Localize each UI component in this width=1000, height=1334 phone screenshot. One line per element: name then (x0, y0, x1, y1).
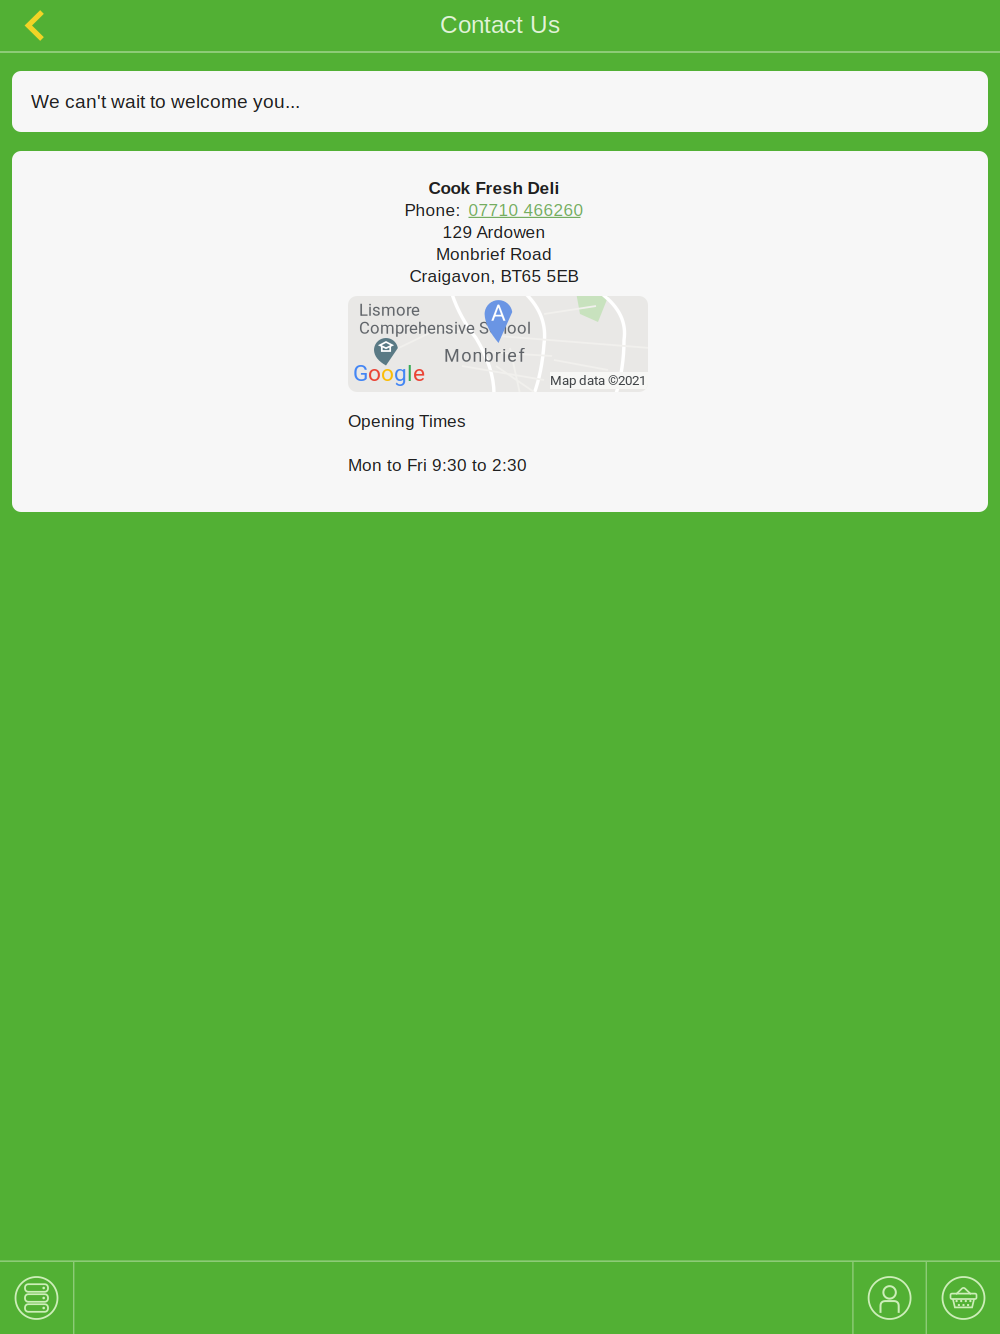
staticText: o (381, 360, 394, 387)
staticText: G (353, 360, 368, 387)
staticText: l (407, 360, 413, 387)
staticText: 129 Ardowen (442, 222, 545, 241)
button[interactable]: My Account (854, 1262, 926, 1334)
staticText: 07710 466260 (468, 200, 583, 219)
button[interactable]: Back (0, 0, 70, 51)
staticText: Mon to Fri 9:30 to 2:30 (348, 455, 527, 474)
staticText: r (495, 345, 501, 366)
button[interactable]: Menu (0, 1262, 73, 1334)
staticText: A (491, 300, 506, 326)
staticText: Map data ©2021 (550, 373, 646, 388)
staticText: e (413, 360, 425, 387)
staticText: n (472, 345, 482, 366)
button[interactable]: Basket (927, 1262, 1000, 1334)
staticText: Cook Fresh Deli (428, 178, 559, 197)
staticText: e (507, 345, 517, 366)
staticText: Contact Us (440, 11, 560, 38)
staticText: Lismore (359, 300, 420, 320)
staticText: Craigavon, BT65 5EB (409, 266, 578, 285)
staticText: M (444, 345, 460, 366)
staticText: g (394, 360, 407, 387)
staticText: We can't wait to welcome you... (31, 91, 300, 112)
staticText: f (518, 345, 524, 366)
staticText: o (461, 345, 471, 366)
staticText: Comprehensive School (359, 318, 531, 338)
button[interactable]: Call 07710 466260 (468, 199, 583, 221)
staticText: Phone: (404, 200, 460, 219)
staticText: Monbrief Road (436, 244, 552, 263)
staticText: Opening Times (348, 411, 466, 430)
staticText: i (502, 345, 506, 366)
staticText: o (368, 360, 381, 387)
staticText: b (484, 345, 494, 366)
